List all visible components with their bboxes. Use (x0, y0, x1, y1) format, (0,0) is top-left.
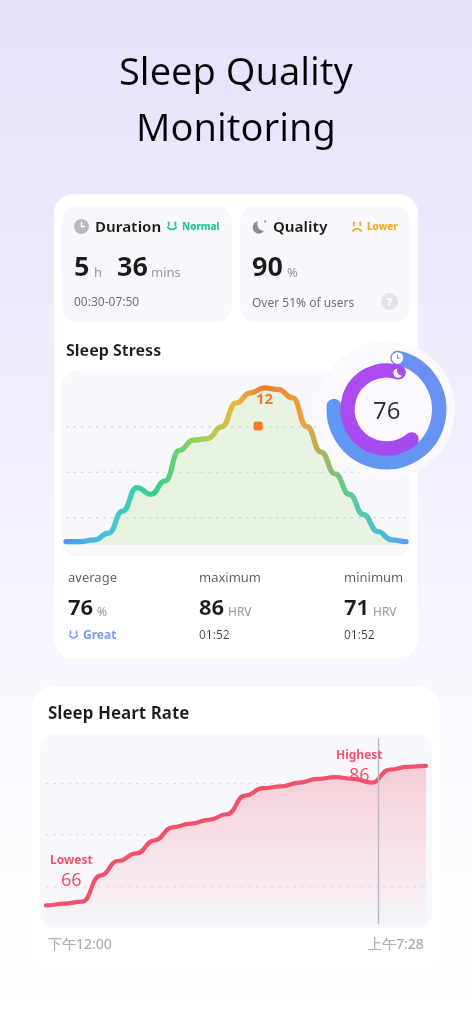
staticText: 下午12:00 (48, 934, 112, 953)
staticText: average (68, 568, 117, 586)
staticText: maximum (199, 568, 262, 586)
staticText: Quality (273, 216, 328, 236)
staticText: HRV (373, 603, 397, 619)
staticText: minimum (344, 568, 404, 586)
staticText: 5 (74, 247, 90, 284)
staticText: 90 (252, 247, 283, 284)
staticText: Sleep Quality (119, 44, 353, 96)
staticText: Sleep Heart Rate (48, 701, 190, 724)
staticText: mins (151, 263, 181, 281)
staticText: 76 (373, 393, 401, 426)
staticText: ? (387, 295, 392, 309)
staticText: Great (83, 626, 117, 642)
button[interactable]: Quality (240, 206, 410, 323)
button[interactable]: Duration (62, 206, 232, 323)
staticText: 01:52 (199, 626, 230, 642)
staticText: 76 (68, 591, 94, 621)
staticText: % (287, 263, 298, 281)
staticText: 00:30-07:50 (74, 293, 140, 309)
staticText: 71 (344, 591, 370, 621)
staticText: 12 (256, 388, 274, 408)
staticText: % (97, 603, 107, 619)
staticText: h (94, 263, 103, 281)
staticText: Highest (336, 746, 383, 762)
staticText: 上午7:28 (368, 934, 424, 953)
button[interactable]: Sleep score 76 (318, 341, 455, 478)
button[interactable]: Help (381, 293, 398, 310)
staticText: 66 (61, 867, 82, 892)
staticText: Normal (182, 219, 220, 233)
staticText: HRV (228, 603, 252, 619)
staticText: 36 (117, 247, 148, 284)
staticText: 01:52 (344, 626, 375, 642)
button[interactable]: Sleep Heart Rate (32, 687, 440, 967)
staticText: Duration (95, 216, 162, 236)
staticText: Lower (367, 219, 398, 233)
staticText: Over 51% of users (252, 294, 355, 310)
staticText: 86 (199, 591, 225, 621)
staticText: Sleep Stress (66, 339, 162, 361)
staticText: Monitoring (136, 100, 336, 152)
staticText: Lowest (50, 851, 93, 867)
staticText: 86 (349, 762, 370, 787)
